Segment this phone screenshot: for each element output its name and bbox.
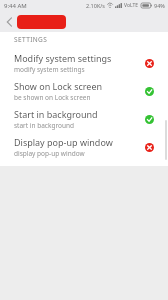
staticText: modify system settings: [14, 65, 85, 74]
staticText: start in background: [14, 121, 74, 130]
staticText: 94%: [154, 2, 165, 9]
staticText: Display pop-up window: [14, 136, 113, 148]
staticText: be shown on Lock screen: [14, 93, 91, 102]
button[interactable]: Modify system settings: [0, 49, 168, 77]
button[interactable]: Display pop-up window: [0, 133, 168, 161]
staticText: display pop-up window: [14, 149, 85, 158]
staticText: VoLTE: [124, 2, 139, 9]
button[interactable]: Back: [0, 13, 18, 31]
staticText: Start in background: [14, 108, 98, 120]
staticText: Show on Lock screen: [14, 80, 103, 92]
button[interactable]: Start in background: [0, 105, 168, 133]
button[interactable]: Denied: [142, 56, 156, 70]
button[interactable]: Allowed: [142, 112, 156, 126]
staticText: 9:44 AM: [4, 2, 27, 10]
button[interactable]: Show on Lock screen: [0, 77, 168, 105]
staticText: Modify system settings: [14, 52, 112, 64]
staticText: SETTINGS: [14, 35, 48, 44]
staticText: 2.10K/s: [86, 2, 105, 9]
button[interactable]: Allowed: [142, 84, 156, 98]
button[interactable]: Denied: [142, 140, 156, 154]
